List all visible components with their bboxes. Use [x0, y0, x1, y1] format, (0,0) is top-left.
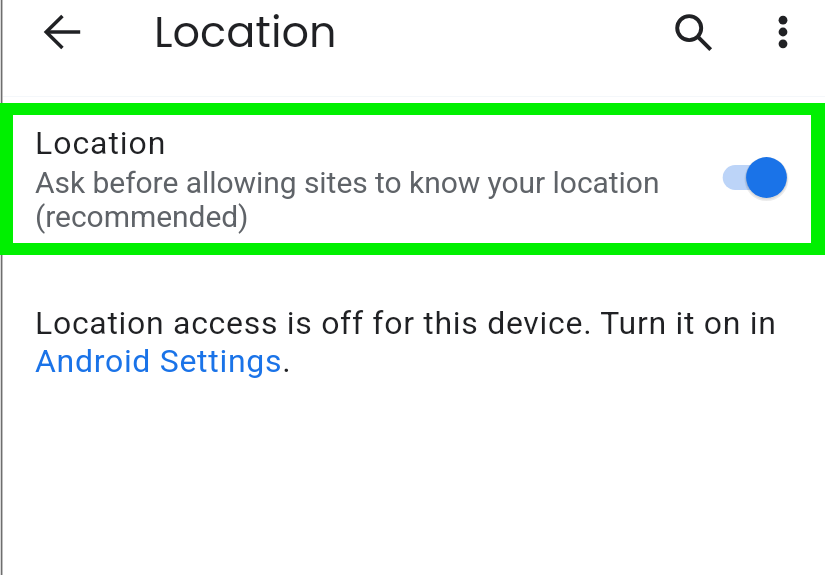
staticText: Location [154, 2, 337, 62]
staticText: Location [35, 124, 167, 162]
button[interactable]: Back [39, 8, 87, 56]
staticText: Ask before allowing sites to know your l… [35, 165, 660, 234]
button[interactable]: Location [13, 115, 811, 243]
button[interactable]: Location switch, on [713, 153, 805, 205]
button[interactable]: Search [669, 9, 717, 57]
button[interactable]: Android Settings [36, 344, 285, 378]
button[interactable]: More options [759, 8, 807, 56]
staticText: Location access is off for this device. … [35, 304, 825, 380]
